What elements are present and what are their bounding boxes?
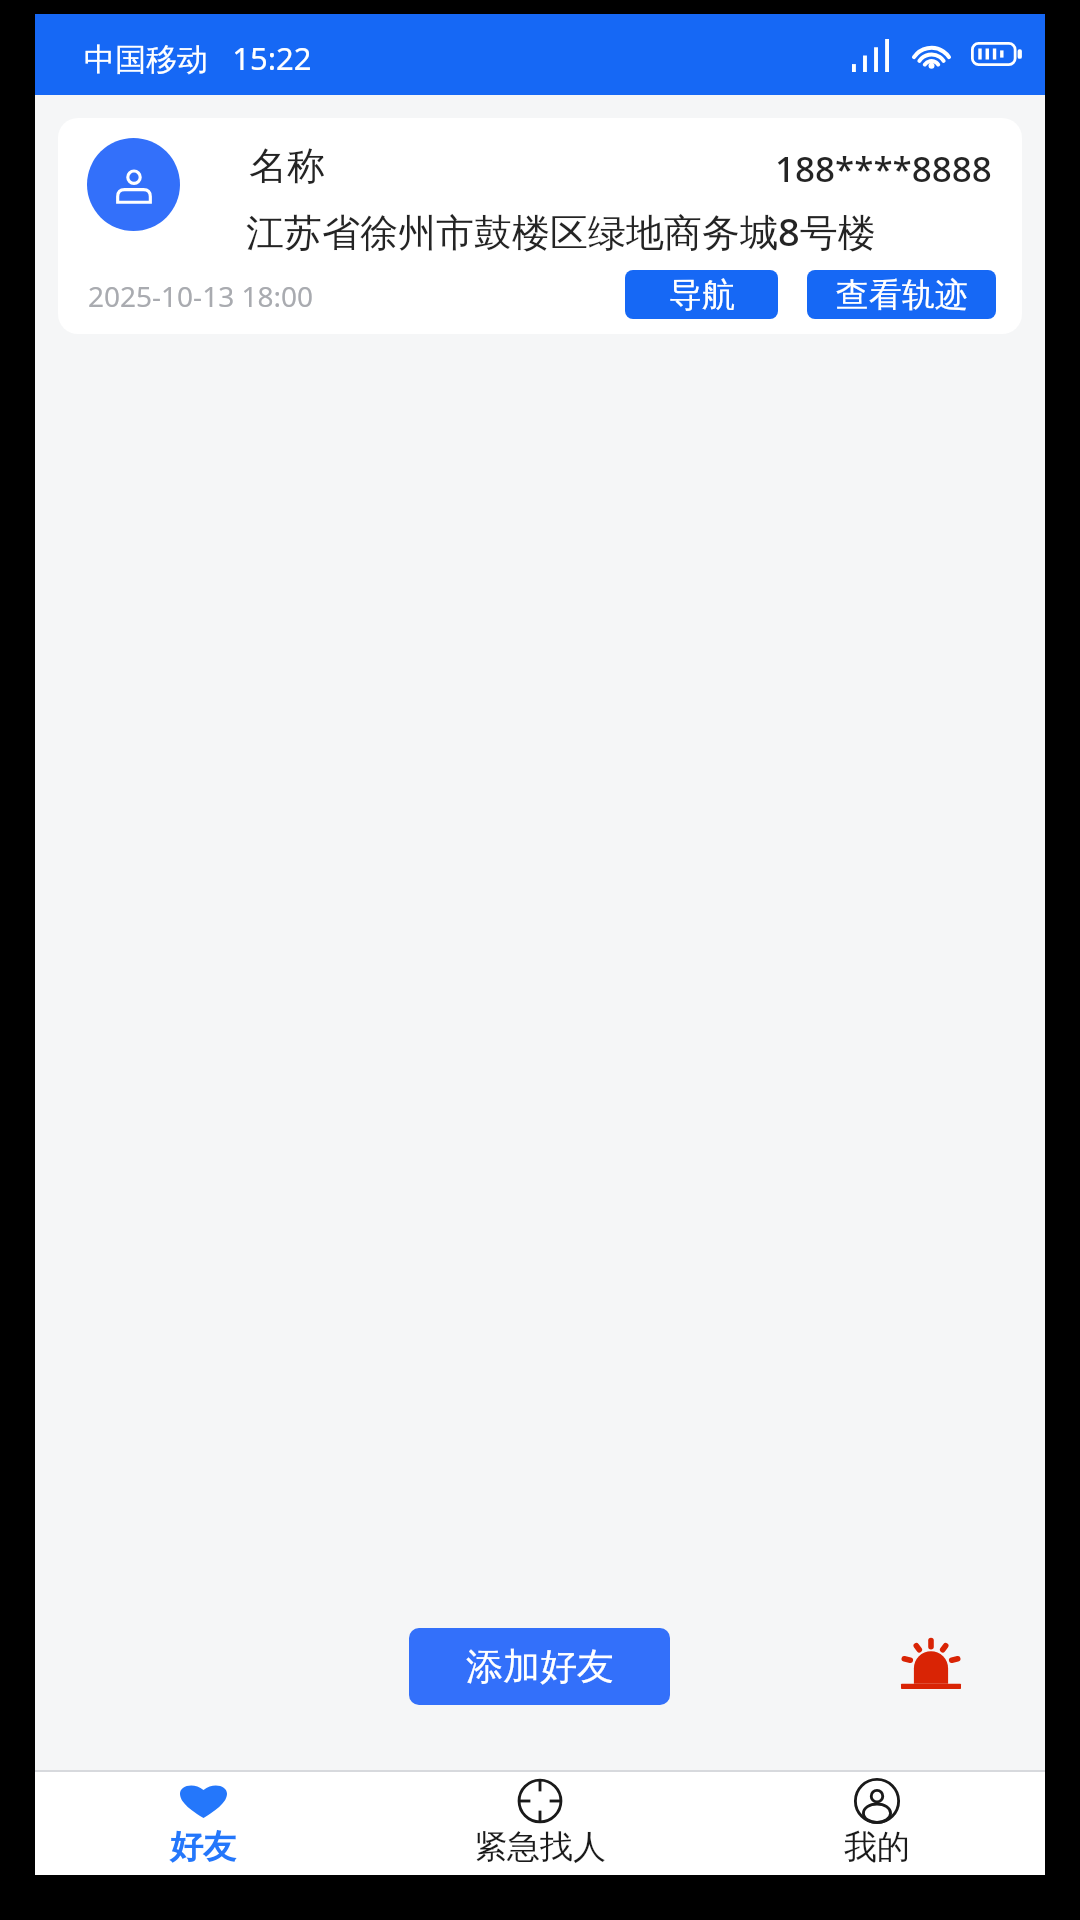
button[interactable]: 添加好友 xyxy=(409,1628,670,1705)
button[interactable]: 名称 xyxy=(58,118,1022,334)
staticText: 添加好友 xyxy=(466,1643,614,1690)
staticText: 188****8888 xyxy=(775,145,992,193)
button[interactable]: 我的 xyxy=(708,1772,1045,1875)
staticText: 江苏省徐州市鼓楼区绿地商务城8号楼 xyxy=(246,205,876,257)
staticText: 导航 xyxy=(669,274,735,316)
staticText: 2025-10-13 18:00 xyxy=(88,277,314,315)
staticText: 中国移动 15:22 xyxy=(84,37,312,79)
staticText: 我的 xyxy=(844,1826,910,1868)
staticText: 好友 xyxy=(170,1826,236,1868)
staticText: 查看轨迹 xyxy=(836,274,968,316)
staticText: 紧急找人 xyxy=(474,1826,606,1868)
button[interactable]: 好友 xyxy=(35,1772,371,1875)
button[interactable]: 紧急求助 xyxy=(881,1614,981,1714)
button[interactable]: 查看轨迹 xyxy=(807,270,996,319)
button[interactable]: 导航 xyxy=(625,270,778,319)
staticText: 名称 xyxy=(249,142,325,190)
button[interactable]: 紧急找人 xyxy=(371,1772,708,1875)
